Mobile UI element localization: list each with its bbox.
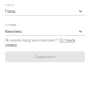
button[interactable]: Продолжить [5,51,85,62]
staticText: Оставьте [59,38,75,42]
button[interactable]: Город [5,3,85,16]
button[interactable]: Оставьте [59,38,75,42]
staticText: Не нашли город или комплекс? [5,38,58,42]
staticText: Комплекс [5,24,16,27]
staticText: Комплекс [5,29,22,34]
staticText: заявку [5,43,17,47]
button[interactable]: Комплекс [5,24,85,36]
staticText: Город [5,3,14,7]
staticText: Продолжить [34,55,56,59]
button[interactable]: заявку [5,43,17,47]
staticText: Город [5,9,15,13]
